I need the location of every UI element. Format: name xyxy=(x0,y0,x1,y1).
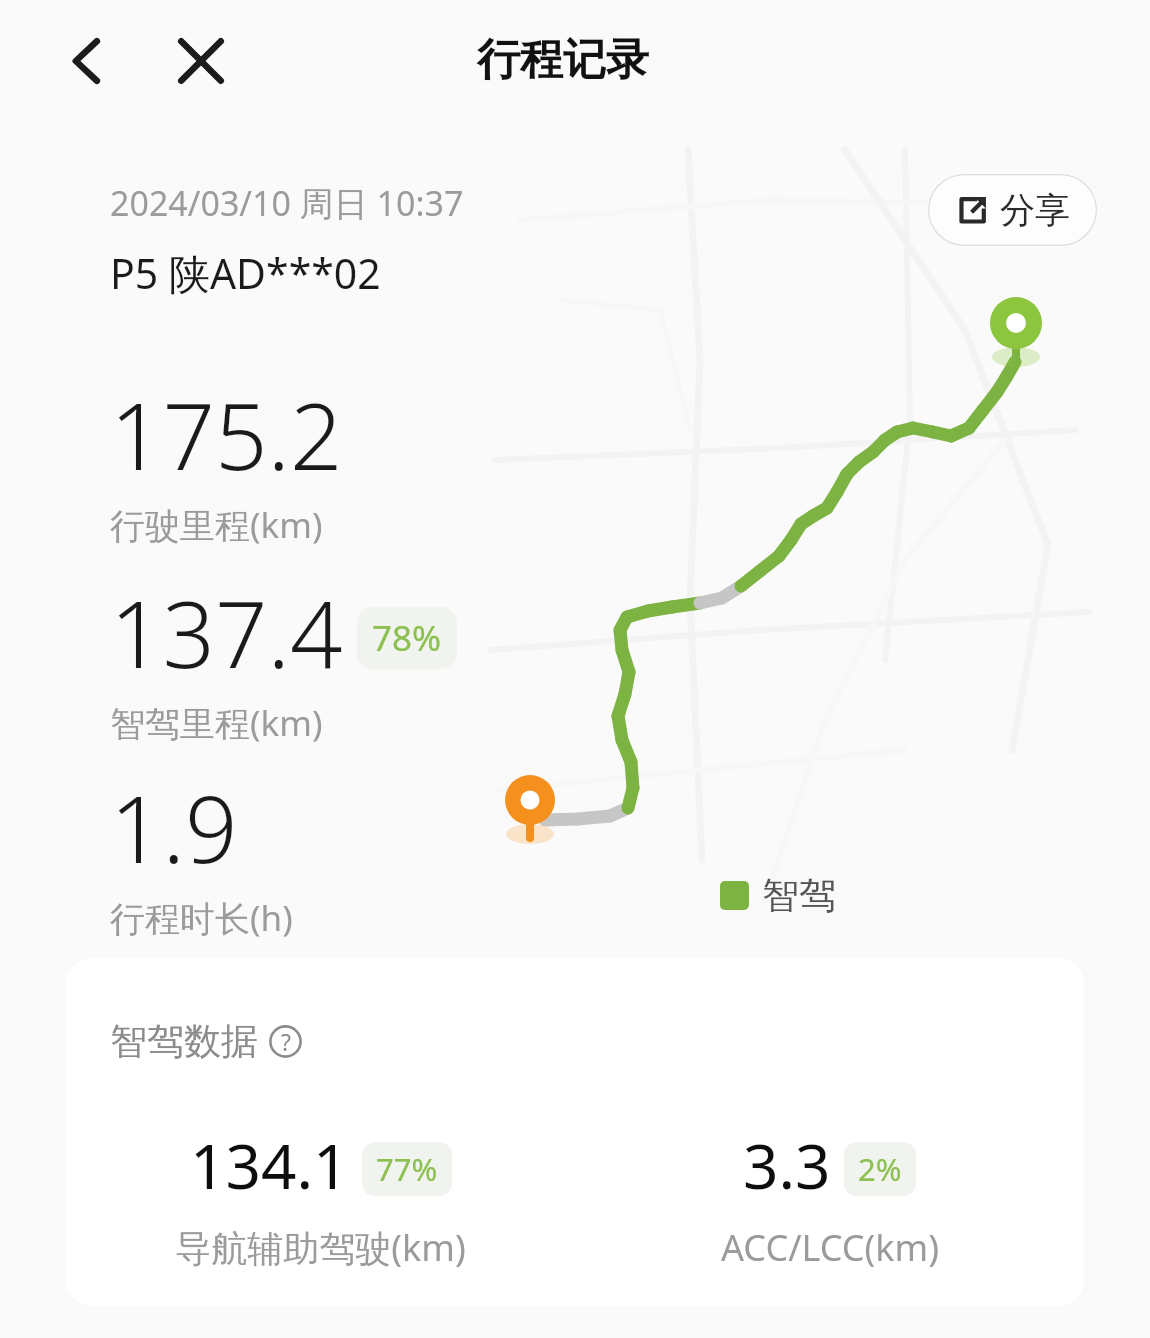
staticText: 137.4 xyxy=(110,570,343,695)
staticText: 智驾 xyxy=(762,872,836,919)
staticText: 77% xyxy=(376,1148,438,1190)
staticText: 智驾数据 xyxy=(110,1018,258,1065)
button[interactable]: Back xyxy=(56,28,122,94)
staticText: 3.3 xyxy=(743,1123,831,1207)
staticText: 134.1 xyxy=(190,1123,349,1207)
staticText: 行程时长(h) xyxy=(110,894,293,942)
button[interactable]: 分享 xyxy=(928,174,1097,246)
staticText: 1.9 xyxy=(110,765,238,890)
button[interactable]: Close xyxy=(168,28,234,94)
staticText: 智驾里程(km) xyxy=(110,699,323,747)
staticText: P5 陕AD***02 xyxy=(110,245,381,301)
staticText: ? xyxy=(281,1026,291,1057)
other: Help xyxy=(269,1025,302,1058)
staticText: ACC/LCC(km) xyxy=(721,1223,939,1272)
staticText: 78% xyxy=(372,614,442,662)
staticText: 行程记录 xyxy=(477,33,649,87)
staticText: 导航辅助驾驶(km) xyxy=(175,1223,466,1272)
staticText: 175.2 xyxy=(110,372,343,497)
staticText: 2% xyxy=(858,1148,902,1190)
staticText: 2024/03/10 周日 10:37 xyxy=(110,180,464,226)
staticText: 行驶里程(km) xyxy=(110,501,323,549)
staticText: 分享 xyxy=(1000,188,1070,232)
button[interactable]: 智驾数据 xyxy=(110,1018,302,1065)
